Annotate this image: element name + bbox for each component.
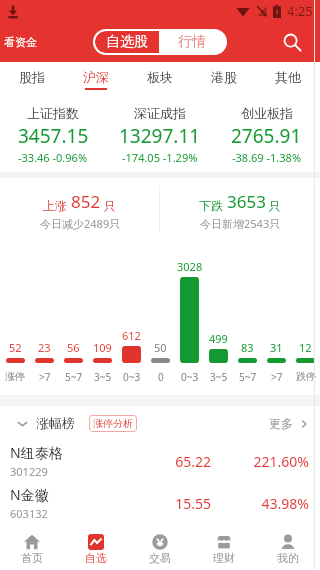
button[interactable]: 创业板指 [213,95,320,172]
staticText: 自选股 [106,33,148,51]
staticText: 3028 [177,259,203,274]
staticText: 23 [38,340,51,355]
staticText: 港股 [211,69,237,85]
staticText: 上证指数 [27,105,79,121]
staticText: 涨停分析 [93,417,133,430]
staticText: 4:25 [287,2,313,20]
button[interactable]: 涨停分析 [89,415,137,432]
staticText: 5~7 [239,370,257,384]
staticText: 612 [122,328,141,343]
staticText: 其他 [275,69,301,85]
button[interactable]: 我的 [256,524,320,570]
staticText: 我的 [277,551,299,565]
button[interactable]: 其他 [256,62,320,95]
button[interactable]: 股指 [0,62,64,95]
staticText: 31 [270,340,283,355]
staticText: 理财 [213,551,235,565]
staticText: 上涨 [43,197,71,213]
button[interactable]: 港股 [192,62,256,95]
staticText: 更多 [269,416,293,431]
staticText: 股指 [19,69,45,85]
staticText: 看资金 [4,35,37,49]
staticText: 52 [9,340,22,355]
staticText: 65.22 [141,452,211,471]
button[interactable]: Search [275,25,309,59]
staticText: 83 [241,340,254,355]
button[interactable]: 行情 [159,31,225,53]
staticText: 行情 [178,33,206,51]
staticText: 603132 [10,506,48,521]
staticText: 15.55 [141,494,211,513]
staticText: 0~3 [181,370,199,384]
staticText: 首页 [21,551,43,565]
button[interactable]: 下跌 [160,178,320,240]
staticText: 0 [158,370,164,384]
staticText: 13297.11 [119,123,201,149]
staticText: -38.69 -1.38% [232,150,302,165]
staticText: 2765.91 [231,123,302,149]
button[interactable]: 上涨 [0,178,160,240]
staticText: 今日新增2543只 [200,216,281,231]
staticText: 板块 [147,69,173,85]
staticText: -174.05 -1.29% [122,150,198,165]
staticText: 12 [299,340,312,355]
staticText: 499 [209,331,228,346]
button[interactable]: 板块 [128,62,192,95]
button[interactable]: 交易 [128,524,192,570]
staticText: 沪深 [83,69,109,85]
staticText: 3~5 [94,370,112,384]
staticText: 221.60% [247,452,309,471]
staticText: 深证成指 [134,105,186,121]
button[interactable]: 沪深 [64,62,128,95]
staticText: 跌停 [296,370,316,383]
staticText: 5~7 [65,370,83,384]
staticText: -33.46 -0.96% [18,150,88,165]
staticText: >7 [39,370,51,384]
staticText: 涨幅榜 [36,415,75,431]
staticText: 自选 [85,551,107,565]
button[interactable]: 自选股 [95,31,159,53]
staticText: 0~3 [123,370,141,384]
staticText: 50 [154,340,167,355]
staticText: 只 [266,197,282,213]
staticText: 43.98% [247,494,309,513]
staticText: 109 [93,340,112,355]
staticText: 852 [71,190,101,213]
staticText: 只 [101,197,117,213]
staticText: N纽泰格 [10,443,63,462]
staticText: 301229 [10,464,48,479]
staticText: N金徽 [10,485,49,504]
staticText: 3653 [227,190,266,213]
staticText: 今日减少2489只 [40,216,121,231]
button[interactable]: 深证成指 [106,95,213,172]
staticText: 3~5 [210,370,228,384]
button[interactable]: 首页 [0,524,64,570]
staticText: 创业板指 [241,105,293,121]
staticText: 3457.15 [18,123,89,149]
button[interactable]: 上证指数 [0,95,106,172]
button[interactable]: N纽泰格 [0,440,320,482]
button[interactable]: 自选 [64,524,128,570]
staticText: 56 [67,340,80,355]
button[interactable]: 理财 [192,524,256,570]
staticText: 下跌 [199,197,227,213]
staticText: 涨停 [5,370,25,383]
button[interactable]: 更多 [269,416,309,431]
staticText: >7 [271,370,283,384]
button[interactable]: N金徽 [0,482,320,524]
staticText: 交易 [149,551,171,565]
